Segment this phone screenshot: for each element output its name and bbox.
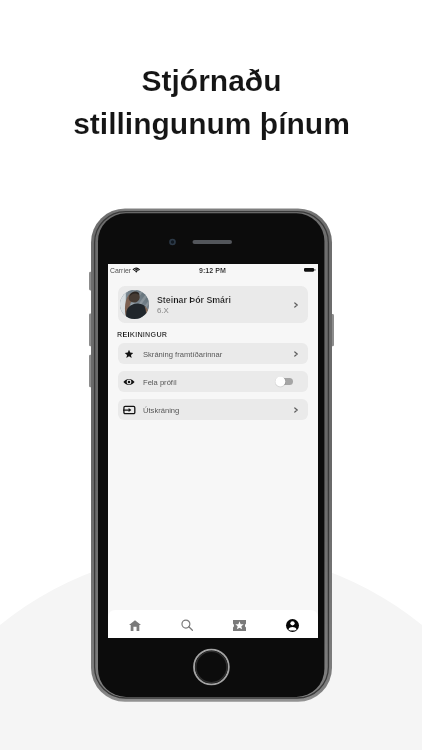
button[interactable]: Tickets (212, 610, 265, 638)
button[interactable]: Fela prófíl (118, 371, 308, 392)
staticText: Fela prófíl (143, 378, 275, 386)
staticText: 6.X (157, 306, 169, 315)
staticText: REIKININGUR (117, 330, 168, 338)
staticText: Skráning framtíðarinnar (143, 350, 291, 358)
staticText: Útskráning (143, 406, 291, 414)
button[interactable]: Profile (265, 610, 318, 638)
staticText: Stjórnaðu stillingunum þínum (73, 64, 350, 141)
staticText: Steinar Þór Smári (157, 295, 231, 305)
button[interactable]: Útskráning (118, 399, 308, 420)
button[interactable]: Steinar Þór Smári (118, 286, 308, 323)
staticText: Carrier (110, 267, 132, 275)
button[interactable]: Hide profile toggle (275, 376, 293, 387)
button[interactable]: Skráning framtíðarinnar (118, 343, 308, 364)
button[interactable]: Search (160, 610, 212, 638)
button[interactable]: Home (108, 610, 160, 638)
staticText: 9:12 PM (199, 267, 226, 275)
